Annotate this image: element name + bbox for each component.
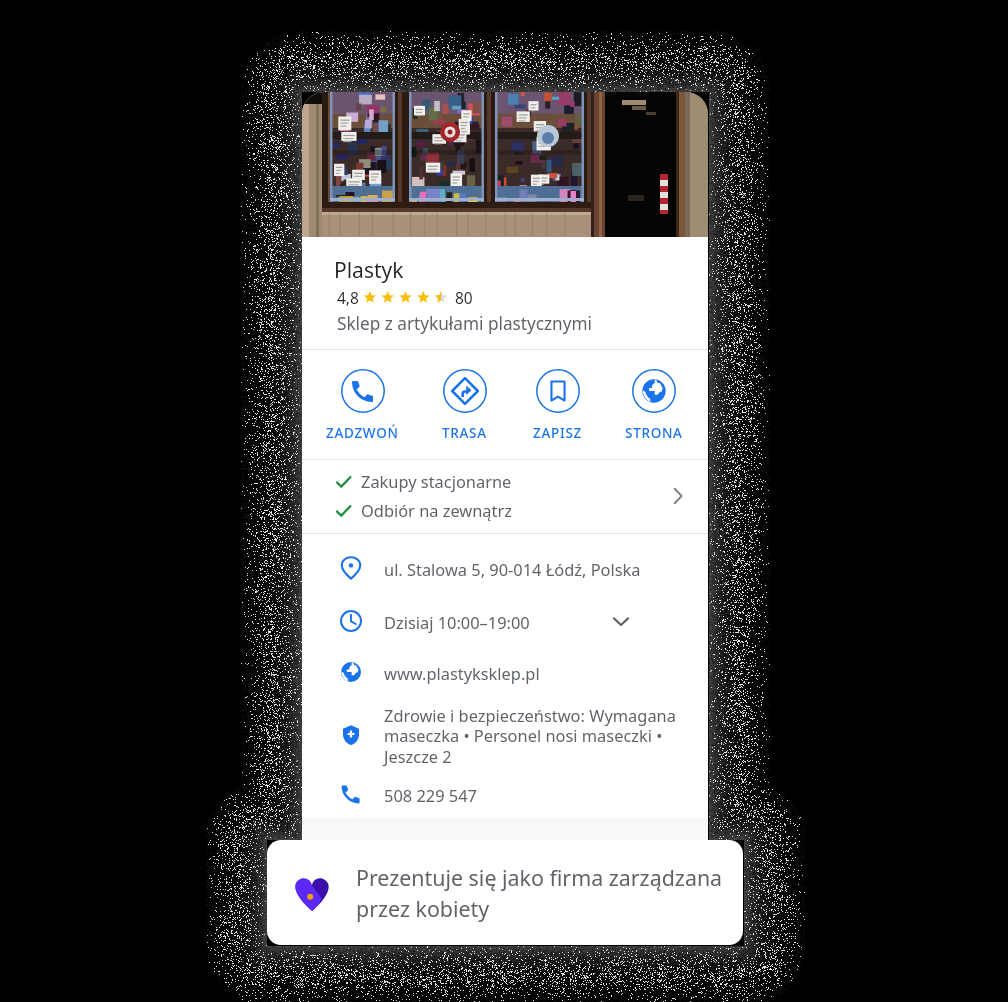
staticText: Odbiór na zewnątrz — [361, 499, 512, 521]
staticText: TRASA — [442, 424, 487, 442]
other: More attributes — [664, 482, 692, 510]
staticText: 4,8 — [337, 287, 359, 308]
staticText: Zdrowie i bezpieczeństwo: Wymagana masec… — [384, 704, 676, 768]
button[interactable]: TRASA — [418, 369, 510, 447]
staticText: Dzisiaj 10:00–19:00 — [384, 611, 530, 633]
button[interactable]: Dzisiaj 10:00–19:00 — [302, 596, 708, 646]
button[interactable]: Zdrowie i bezpieczeństwo: Wymagana masec… — [302, 699, 708, 771]
staticText: ZADZWOŃ — [326, 424, 399, 442]
staticText: STRONA — [625, 424, 683, 442]
button[interactable]: ZAPISZ — [511, 369, 603, 447]
staticText: 80 — [455, 287, 473, 308]
button[interactable]: 508 229 547 — [302, 769, 708, 819]
other: Women-led business badge — [292, 872, 332, 912]
button[interactable]: STRONA — [608, 369, 700, 447]
staticText: ul. Stalowa 5, 90-014 Łódź, Polska — [384, 558, 641, 580]
button[interactable]: Women-led business badge — [267, 840, 743, 945]
staticText: www.plastyksklep.pl — [384, 662, 540, 684]
staticText: Zakupy stacjonarne — [361, 470, 512, 492]
button[interactable]: Zakupy stacjonarne — [302, 460, 708, 534]
staticText: Sklep z artykułami plastycznymi — [337, 312, 592, 335]
staticText: Prezentuje się jako firma zarządzana prz… — [356, 863, 723, 924]
staticText: 508 229 547 — [384, 784, 477, 806]
button[interactable]: Business photo — [302, 92, 708, 238]
button[interactable]: ZADZWOŃ — [316, 369, 408, 447]
staticText: Plastyk — [334, 256, 404, 285]
button[interactable]: www.plastyksklep.pl — [302, 647, 708, 697]
button[interactable]: ul. Stalowa 5, 90-014 Łódź, Polska — [302, 543, 708, 593]
staticText: ZAPISZ — [533, 424, 582, 442]
